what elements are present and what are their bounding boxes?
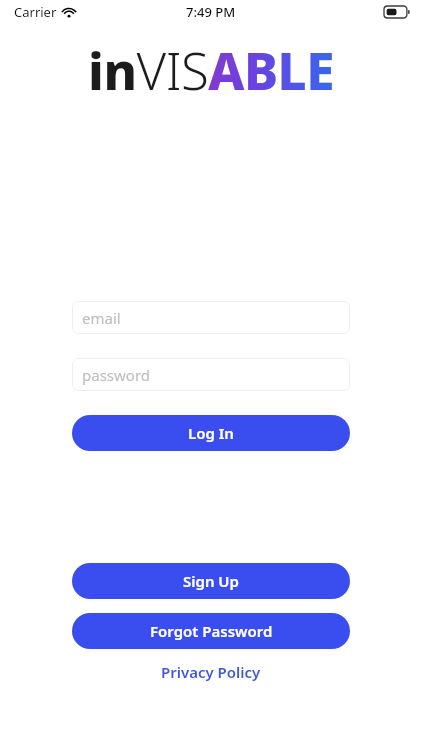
staticText: email [82, 308, 121, 328]
staticText: Privacy Policy [161, 662, 261, 682]
button[interactable]: Forgot Password [72, 613, 350, 649]
staticText: Log In [188, 423, 234, 443]
staticText: password [82, 365, 150, 385]
staticText: Forgot Password [150, 621, 273, 641]
staticText: Sign Up [183, 571, 239, 591]
button[interactable]: password [72, 358, 350, 391]
button[interactable]: email [72, 301, 350, 334]
button[interactable]: Sign Up [72, 563, 350, 599]
button[interactable]: Log In [72, 415, 350, 451]
staticText: Carrier [14, 3, 57, 21]
staticText: inVISABLE [0, 35, 422, 104]
staticText: 7:49 PM [186, 3, 236, 21]
button[interactable]: Privacy Policy [72, 662, 350, 682]
